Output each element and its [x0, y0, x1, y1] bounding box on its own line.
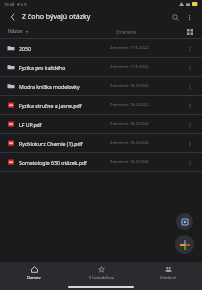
staticText: Zmenené 18.4.2022	[110, 159, 149, 165]
button[interactable]: Zdieľané	[135, 262, 202, 284]
staticText: Modra knižka modelovky	[19, 83, 108, 90]
button[interactable]: LF UP.pdf	[0, 115, 202, 134]
staticText: Zmenené	[116, 29, 136, 35]
staticText: S hviezdičkou	[89, 275, 115, 280]
staticText: Domov	[27, 275, 41, 280]
button[interactable]: More actions	[184, 138, 195, 149]
staticText: Zmenené 18.4.2022	[110, 121, 149, 127]
button[interactable]: S hviezdičkou	[68, 262, 135, 284]
button[interactable]: Rychlokurz Chemie (1).pdf	[0, 134, 202, 153]
staticText: Zmenené 17.6.2022	[110, 64, 149, 70]
button[interactable]: More actions	[184, 81, 195, 92]
button[interactable]: New	[175, 235, 194, 254]
button[interactable]: More actions	[184, 62, 195, 73]
button[interactable]: Fyzika stručne a jasne.pdf	[0, 96, 202, 115]
button[interactable]: Switch to grid view	[184, 26, 195, 37]
staticText: Zmenené 18.4.2022	[110, 102, 149, 108]
staticText: Z čoho bývajú otázky	[22, 12, 168, 22]
button[interactable]: Back	[6, 10, 19, 23]
staticText: 6 %	[21, 2, 27, 7]
button[interactable]: 2050	[0, 39, 202, 58]
button[interactable]: More actions	[184, 157, 195, 168]
staticText: Názov	[8, 28, 23, 35]
button[interactable]: More actions	[184, 100, 195, 111]
staticText: 2050	[19, 45, 108, 52]
button[interactable]: Modra knižka modelovky	[0, 77, 202, 96]
button[interactable]: Názov	[7, 27, 30, 36]
staticText: Rychlokurz Chemie (1).pdf	[19, 140, 108, 147]
button[interactable]: Somatologie 630 otázek.pdf	[0, 153, 202, 172]
button[interactable]: More actions	[184, 43, 195, 54]
staticText: Zmenené 17.6.2022	[110, 45, 149, 51]
staticText: Zmenené 18.4.2022	[110, 83, 149, 89]
staticText: Fyzika stručne a jasne.pdf	[19, 102, 108, 109]
button[interactable]: Domov	[0, 262, 68, 284]
staticText: 19:28	[4, 2, 15, 7]
button[interactable]: More options	[182, 10, 196, 24]
button[interactable]: Search	[168, 10, 182, 24]
staticText: Zmenené 18.4.2022	[110, 140, 149, 146]
button[interactable]: Fyzika pro každého	[0, 58, 202, 77]
button[interactable]: Scan	[176, 213, 193, 230]
button[interactable]: More actions	[184, 119, 195, 130]
staticText: Fyzika pro každého	[19, 64, 108, 71]
staticText: Somatologie 630 otázek.pdf	[19, 159, 108, 166]
staticText: Zdieľané	[160, 275, 177, 280]
staticText: LF UP.pdf	[19, 121, 108, 128]
